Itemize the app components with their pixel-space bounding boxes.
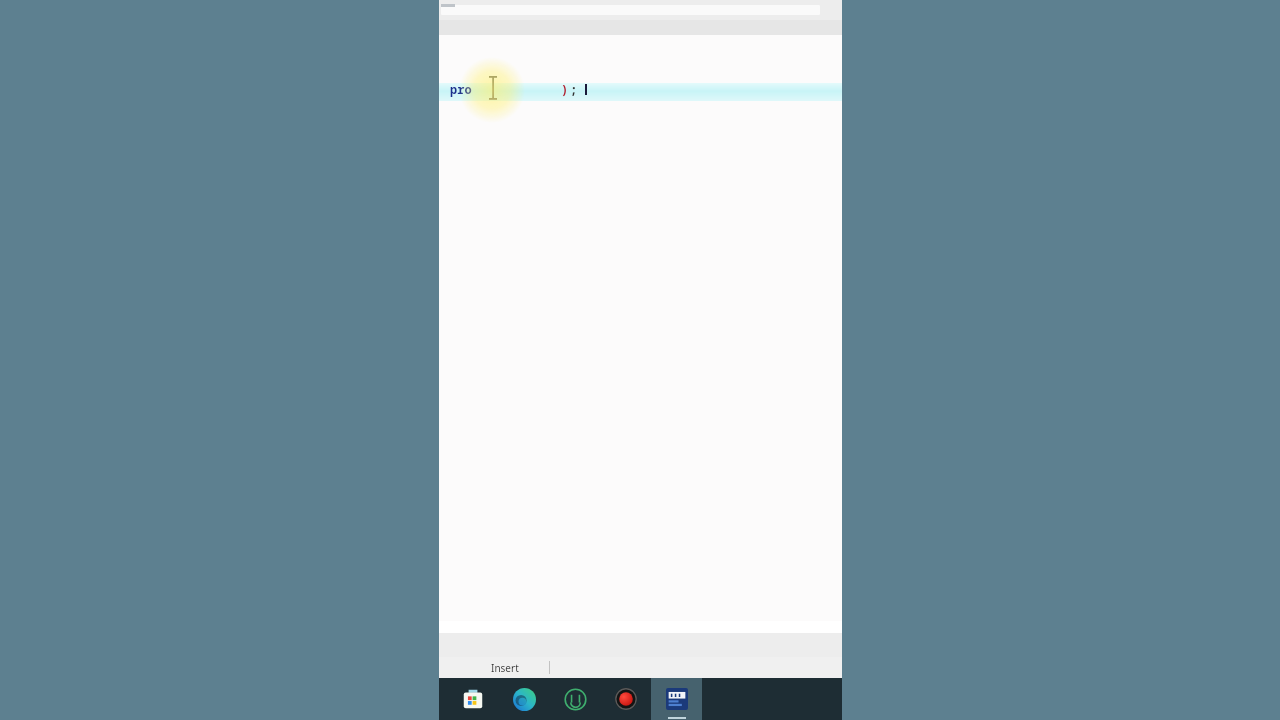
staticText: Insert <box>491 661 519 675</box>
button[interactable]: Microsoft Edge <box>498 678 549 720</box>
staticText: pro <box>450 81 472 97</box>
button[interactable]: Microsoft Store <box>447 678 498 720</box>
button[interactable] <box>441 5 820 15</box>
button[interactable]: Recorder <box>600 678 651 720</box>
button[interactable]: uTorrent <box>549 678 600 720</box>
staticText: ) <box>561 81 569 97</box>
staticText: ; <box>570 81 578 97</box>
button[interactable]: Dev C++ <box>651 678 702 720</box>
